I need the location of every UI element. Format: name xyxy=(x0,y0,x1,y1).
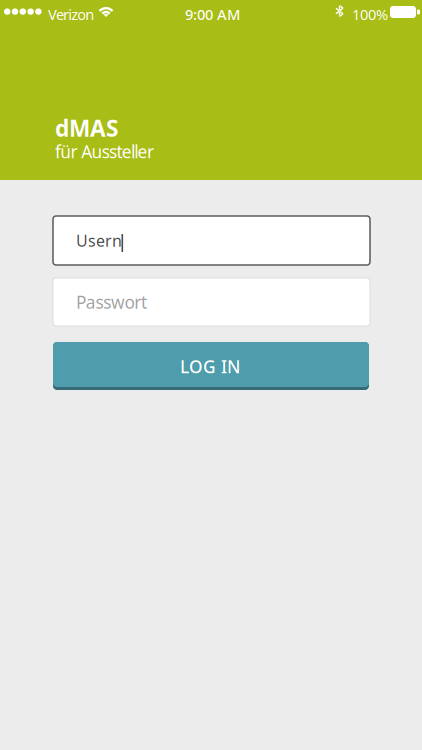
staticText: 9:00 AM xyxy=(185,4,240,24)
staticText: Verizon xyxy=(48,4,94,24)
button[interactable]: Passwort xyxy=(53,278,370,326)
staticText: LOG IN xyxy=(180,355,240,378)
staticText: dMAS xyxy=(55,113,118,143)
button[interactable]: Usern xyxy=(53,216,370,265)
staticText: für Aussteller xyxy=(55,140,154,163)
staticText: 100% xyxy=(352,4,388,24)
staticText: Usern xyxy=(76,230,122,251)
button[interactable]: LOG IN xyxy=(53,342,369,390)
staticText: Passwort xyxy=(76,290,147,313)
